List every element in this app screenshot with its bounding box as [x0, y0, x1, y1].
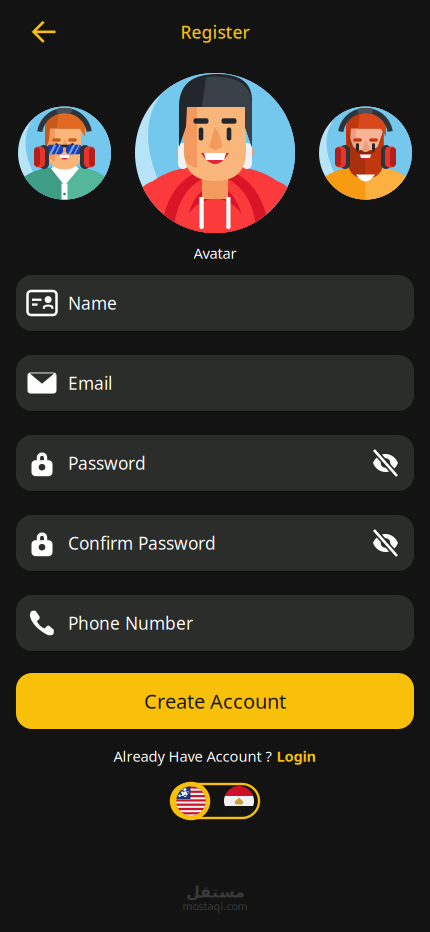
- staticText: Create Account: [144, 688, 286, 714]
- button[interactable]: Create Account: [16, 673, 414, 729]
- staticText: Avatar: [193, 243, 236, 263]
- staticText: Phone Number: [68, 611, 193, 634]
- button[interactable]: Avatar option 1: [18, 106, 111, 199]
- button[interactable]: Name: [16, 275, 414, 331]
- button[interactable]: Login: [276, 746, 316, 766]
- staticText: Name: [68, 291, 117, 314]
- button[interactable]: Selected avatar: [135, 73, 295, 233]
- button[interactable]: Email: [16, 355, 414, 411]
- button[interactable]: Avatar option 3: [319, 106, 412, 199]
- staticText: Email: [68, 371, 112, 394]
- staticText: مستقل: [185, 883, 244, 901]
- staticText: Login: [276, 746, 316, 766]
- button[interactable]: Language: [166, 779, 264, 823]
- staticText: Register: [180, 20, 249, 43]
- button[interactable]: Phone Number: [16, 595, 414, 651]
- staticText: Confirm Password: [68, 531, 216, 554]
- button[interactable]: Confirm Password: [16, 515, 414, 571]
- button[interactable]: Back: [16, 10, 72, 54]
- staticText: Password: [68, 451, 146, 474]
- staticText: mostaql.com: [182, 899, 247, 913]
- staticText: Already Have Account ?: [113, 746, 271, 766]
- button[interactable]: Password: [16, 435, 414, 491]
